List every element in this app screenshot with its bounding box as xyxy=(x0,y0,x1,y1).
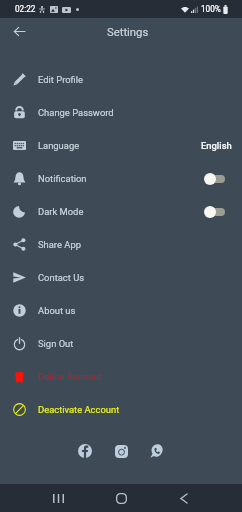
staticText: 100% xyxy=(201,4,221,14)
button[interactable]: Instagram xyxy=(110,440,132,462)
staticText: English xyxy=(201,140,232,151)
staticText: Sign Out xyxy=(38,338,74,349)
button[interactable]: Delete Account xyxy=(0,360,242,393)
button[interactable]: Change Password xyxy=(0,96,242,129)
staticText: Deactivate Account xyxy=(38,404,120,415)
staticText: Share App xyxy=(38,239,81,250)
button[interactable]: Back xyxy=(5,17,33,45)
staticText: Edit Profile xyxy=(38,74,84,85)
button[interactable]: Dark Mode xyxy=(0,195,242,228)
button[interactable]: Back xyxy=(170,484,198,512)
button[interactable]: Language xyxy=(0,129,242,162)
button[interactable]: Edit Profile xyxy=(0,63,242,96)
staticText: Delete Account xyxy=(38,371,102,382)
button[interactable]: Recent apps xyxy=(44,484,72,512)
staticText: Contact Us xyxy=(38,272,85,283)
button[interactable]: About us xyxy=(0,294,242,327)
staticText: Settings xyxy=(107,26,149,39)
staticText: Change Password xyxy=(38,107,114,118)
button[interactable]: Contact Us xyxy=(0,261,242,294)
staticText: Dark Mode xyxy=(38,206,84,217)
staticText: About us xyxy=(38,305,76,316)
button[interactable]: Sign Out xyxy=(0,327,242,360)
button[interactable]: Deactivate Account xyxy=(0,393,242,426)
button[interactable]: Share App xyxy=(0,228,242,261)
staticText: Notification xyxy=(38,173,87,184)
button[interactable]: Notification xyxy=(0,162,242,195)
button[interactable]: Home xyxy=(107,484,135,512)
button[interactable]: Facebook xyxy=(74,440,96,462)
button[interactable]: WhatsApp xyxy=(146,440,168,462)
staticText: 02:22 xyxy=(15,4,36,14)
staticText: Language xyxy=(38,140,80,151)
